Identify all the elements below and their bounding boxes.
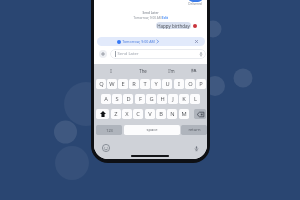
button[interactable]: The <box>133 65 153 76</box>
button[interactable]: K <box>179 94 189 104</box>
button[interactable]: Add attachment <box>99 50 107 58</box>
button[interactable]: Emoji <box>102 144 110 152</box>
button[interactable]: J <box>168 94 178 104</box>
staticText: M <box>181 110 187 118</box>
button[interactable]: S <box>112 94 122 104</box>
button[interactable]: Happy birthday <box>156 22 191 29</box>
staticText: U <box>165 80 170 88</box>
staticText: A <box>104 95 108 103</box>
staticText: E <box>121 80 125 88</box>
staticText: J <box>172 95 174 103</box>
button[interactable]: N <box>167 109 177 119</box>
staticText: Z <box>114 110 118 118</box>
staticText: G <box>149 95 154 103</box>
staticText: X <box>125 110 129 118</box>
button[interactable]: G <box>146 94 156 104</box>
staticText: I <box>178 80 180 88</box>
button[interactable]: Backspace <box>194 109 206 119</box>
staticText: R <box>132 80 136 88</box>
button[interactable]: return <box>181 125 207 135</box>
button[interactable]: T <box>140 79 150 89</box>
staticText: T <box>143 80 147 88</box>
button[interactable]: B <box>156 109 166 119</box>
button[interactable]: 123 <box>96 125 122 135</box>
button[interactable]: Shift <box>96 109 109 119</box>
staticText: B <box>159 110 163 118</box>
button[interactable]: A <box>101 94 111 104</box>
button[interactable]: I <box>101 65 121 76</box>
staticText: V <box>148 110 152 118</box>
button[interactable]: M <box>179 109 189 119</box>
staticText: Delivered <box>188 2 202 6</box>
button[interactable]: E <box>118 79 128 89</box>
button[interactable]: Cancel scheduled send <box>192 37 200 46</box>
staticText: Y <box>154 80 158 88</box>
button[interactable]: Send Later <box>110 49 206 59</box>
button[interactable]: Keyboard settings <box>188 65 199 76</box>
staticText: I <box>110 68 112 74</box>
staticText: S <box>115 95 119 103</box>
staticText: Happy birthday <box>157 23 190 29</box>
button[interactable]: C <box>133 109 143 119</box>
button[interactable]: W <box>107 79 117 89</box>
button[interactable]: Z <box>111 109 121 119</box>
staticText: return <box>188 127 201 133</box>
button[interactable]: I <box>174 79 184 89</box>
button[interactable]: P <box>196 79 206 89</box>
button[interactable]: O <box>185 79 195 89</box>
button[interactable]: Dictate <box>192 144 200 152</box>
button[interactable]: L <box>190 94 200 104</box>
staticText: Send Later <box>142 11 159 15</box>
button[interactable]: H <box>157 94 167 104</box>
staticText: H <box>160 95 165 103</box>
button[interactable]: R <box>129 79 139 89</box>
staticText: F <box>139 95 142 103</box>
staticText: Tomorrow, 9:00 AM <box>133 16 162 20</box>
staticText: Send Later <box>117 51 139 57</box>
staticText: Q <box>99 80 104 88</box>
button[interactable]: Y <box>151 79 161 89</box>
staticText: K <box>182 95 186 103</box>
staticText: Tomorrow, 9:00 AM <box>122 39 155 44</box>
button[interactable]: U <box>162 79 172 89</box>
button[interactable]: V <box>145 109 155 119</box>
button[interactable]: I'm <box>161 65 181 76</box>
staticText: W <box>109 80 115 88</box>
staticText: 123 <box>106 128 113 133</box>
staticText: Edit <box>162 16 168 20</box>
button[interactable]: Tomorrow, 9:00 AM <box>97 37 205 46</box>
button[interactable]: X <box>122 109 132 119</box>
staticText: C <box>136 110 140 118</box>
button[interactable]: Q <box>96 79 106 89</box>
staticText: D <box>126 95 131 103</box>
button[interactable]: D <box>123 94 133 104</box>
button[interactable]: space <box>124 125 180 135</box>
staticText: O <box>188 80 193 88</box>
staticText: The <box>139 68 147 74</box>
staticText: space <box>146 127 158 133</box>
button[interactable]: F <box>135 94 145 104</box>
staticText: N <box>170 110 175 118</box>
staticText: I'm <box>168 68 175 74</box>
staticText: L <box>194 95 197 103</box>
staticText: P <box>199 80 203 88</box>
